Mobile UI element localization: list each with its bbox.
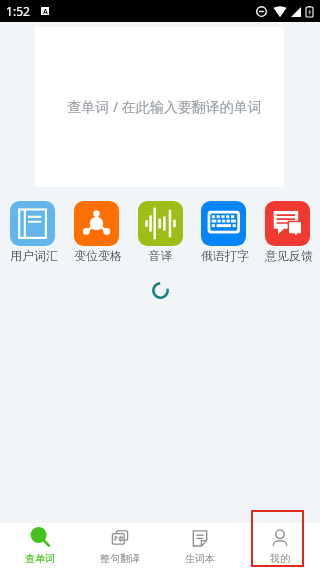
button[interactable]: 变位变格 [74,201,119,263]
staticText: 俄语打字 [201,248,246,263]
staticText: 查单词 [25,552,55,565]
button[interactable]: 音译 [138,201,183,263]
staticText: 查单词 / 在此输入要翻译的单词 [67,97,262,116]
staticText: 用户词汇 [10,248,55,263]
button[interactable]: 意见反馈 [265,201,310,263]
button[interactable]: 整句翻译 [80,527,160,565]
staticText: 意见反馈 [265,248,310,263]
staticText: 1:52 [6,3,30,19]
staticText: 我的 [270,552,290,565]
staticText: 音译 [138,248,183,263]
staticText: 整句翻译 [100,552,140,565]
button[interactable]: 用户词汇 [10,201,55,263]
button[interactable]: 俄语打字 [201,201,246,263]
button[interactable]: 我的 [240,527,320,565]
staticText: 生词本 [185,552,215,565]
button[interactable]: 查单词 [0,527,80,565]
button[interactable]: 生词本 [160,527,240,565]
staticText: A [43,7,48,15]
staticText: 变位变格 [74,248,119,263]
button[interactable]: 查单词输入框 [35,27,284,187]
